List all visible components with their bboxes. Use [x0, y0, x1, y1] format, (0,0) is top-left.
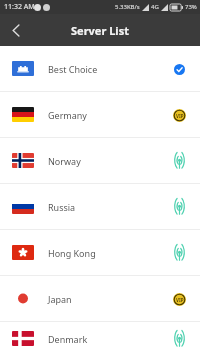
staticText: Russia: [48, 201, 170, 213]
staticText: Japan: [48, 293, 170, 305]
button[interactable]: Hong Kong: [0, 230, 200, 275]
staticText: 5.33KB/s: [115, 3, 140, 11]
button[interactable]: Russia: [0, 184, 200, 229]
staticText: Server List: [71, 23, 129, 38]
staticText: Germany: [48, 109, 170, 121]
button[interactable]: Denmark: [0, 322, 200, 355]
staticText: Norway: [48, 155, 170, 167]
button[interactable]: Germany: [0, 92, 200, 137]
staticText: 4G: [151, 3, 159, 11]
staticText: 11:32 AM: [4, 2, 35, 12]
staticText: VIP: [176, 113, 184, 119]
button[interactable]: Japan: [0, 276, 200, 321]
staticText: Denmark: [48, 333, 170, 345]
staticText: 73%: [185, 3, 197, 11]
button[interactable]: Norway: [0, 138, 200, 183]
staticText: Hong Kong: [48, 247, 170, 259]
button[interactable]: Best Choice: [0, 46, 200, 91]
button[interactable]: Back: [0, 14, 32, 46]
staticText: Best Choice: [48, 63, 170, 75]
staticText: VIP: [176, 297, 184, 303]
